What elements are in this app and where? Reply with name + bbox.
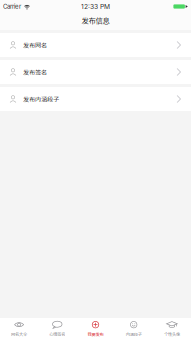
staticText: 个性头像 <box>164 331 180 337</box>
button[interactable]: 发布签名 <box>0 60 191 84</box>
button[interactable]: 心情签名 <box>38 318 76 340</box>
button[interactable]: 网名大全 <box>0 318 38 340</box>
button[interactable]: 发布内涵段子 <box>0 87 191 111</box>
staticText: 发布内涵段子 <box>23 95 59 103</box>
button[interactable]: 个性头像 <box>153 318 191 340</box>
staticText: 心情签名 <box>49 331 65 337</box>
button[interactable]: 内涵段子 <box>115 318 153 340</box>
staticText: 内涵段子 <box>126 331 142 337</box>
staticText: 网名大全 <box>11 331 27 337</box>
button[interactable]: 发布网名 <box>0 33 191 57</box>
staticText: 发布网名 <box>23 41 47 49</box>
staticText: 发布签名 <box>23 68 47 76</box>
staticText: Carrier <box>3 3 21 10</box>
staticText: 我要发布 <box>87 331 103 337</box>
staticText: 发布信息 <box>81 15 109 25</box>
staticText: 12:33 PM <box>81 2 110 11</box>
button[interactable]: 我要发布 <box>76 318 115 340</box>
